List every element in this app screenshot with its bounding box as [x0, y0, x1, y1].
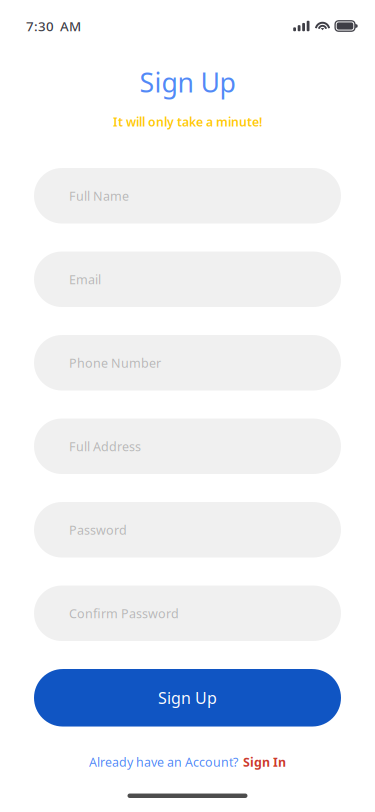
- button[interactable]: Email: [34, 251, 341, 307]
- button[interactable]: Sign Up: [34, 669, 341, 726]
- staticText: Already have an Account?: [89, 753, 238, 770]
- staticText: Phone Number: [69, 354, 161, 371]
- staticText: Password: [69, 521, 127, 538]
- staticText: Sign In: [243, 753, 286, 770]
- staticText: Sign Up: [158, 687, 217, 709]
- staticText: Email: [69, 271, 101, 288]
- staticText: Confirm Password: [69, 605, 179, 622]
- button[interactable]: Phone Number: [34, 335, 341, 390]
- staticText: 7:30 AM: [26, 17, 81, 35]
- button[interactable]: Confirm Password: [34, 585, 341, 641]
- staticText: It will only take a minute!: [113, 113, 262, 130]
- staticText: Full Name: [69, 187, 129, 204]
- staticText: Sign Up: [139, 64, 235, 100]
- button[interactable]: Already have an Account?: [89, 749, 286, 774]
- staticText: Full Address: [69, 438, 141, 455]
- button[interactable]: Full Address: [34, 418, 341, 474]
- button[interactable]: Password: [34, 502, 341, 557]
- button[interactable]: Full Name: [34, 168, 341, 223]
